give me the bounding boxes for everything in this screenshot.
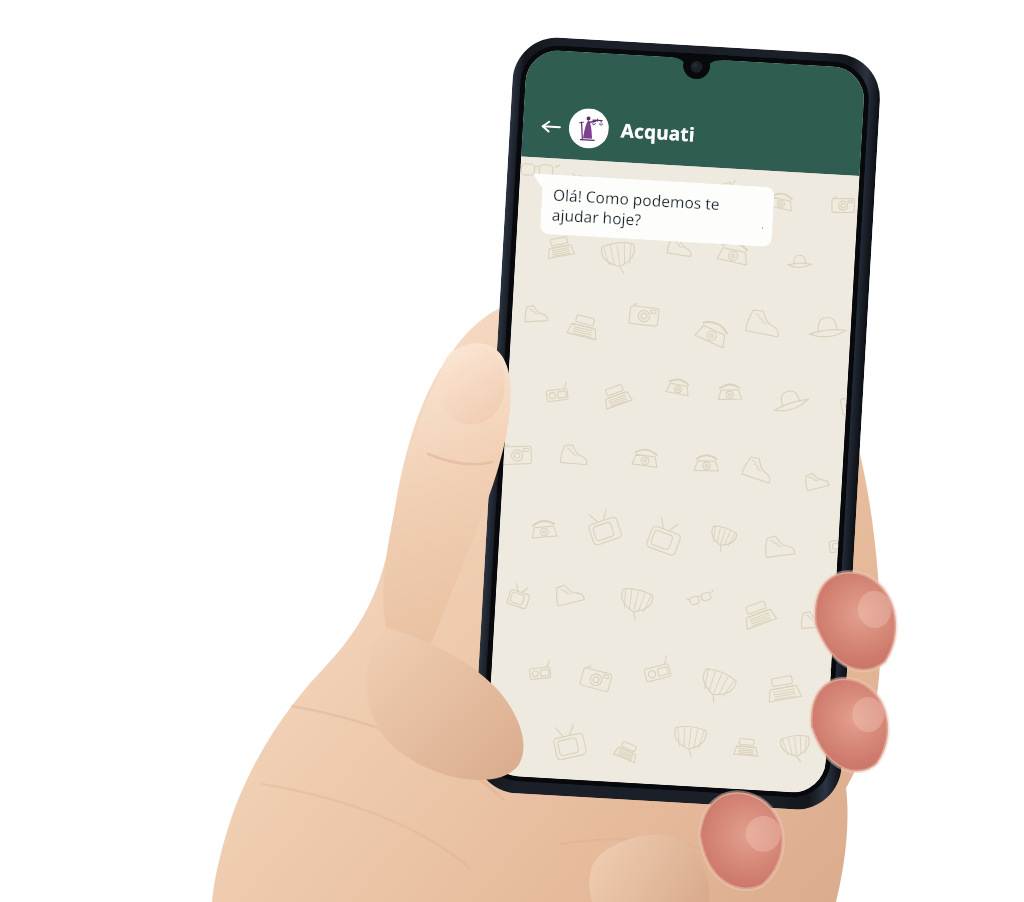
button[interactable]: Acquati profile photo [568, 107, 610, 149]
button[interactable]: Acquati [620, 117, 696, 148]
staticText: Acquati [620, 117, 696, 148]
button[interactable]: Olá! Como podemos te ajudar hoje? [540, 174, 775, 247]
staticText: Olá! Como podemos te ajudar hoje? [551, 183, 763, 237]
button[interactable]: Back [534, 110, 566, 142]
